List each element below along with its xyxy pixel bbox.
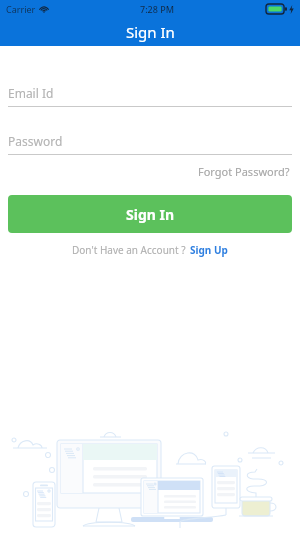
button[interactable]: Password <box>0 128 300 155</box>
staticText: Sign Up <box>190 243 228 257</box>
button[interactable]: Email Id <box>0 80 300 107</box>
staticText: Email Id <box>8 85 54 101</box>
staticText: Carrier <box>6 3 36 15</box>
staticText: Don't Have an Account ? <box>72 243 186 257</box>
button[interactable]: Sign Up <box>189 241 229 259</box>
staticText: Sign In <box>126 22 175 42</box>
staticText: Sign In <box>126 205 175 224</box>
staticText: Password <box>8 133 63 149</box>
staticText: 7:28 PM <box>140 3 174 15</box>
button[interactable]: Forgot Password? <box>196 161 292 182</box>
staticText: Forgot Password? <box>198 164 290 179</box>
other: Devices illustration <box>0 418 300 533</box>
button[interactable]: Sign In <box>8 195 292 233</box>
